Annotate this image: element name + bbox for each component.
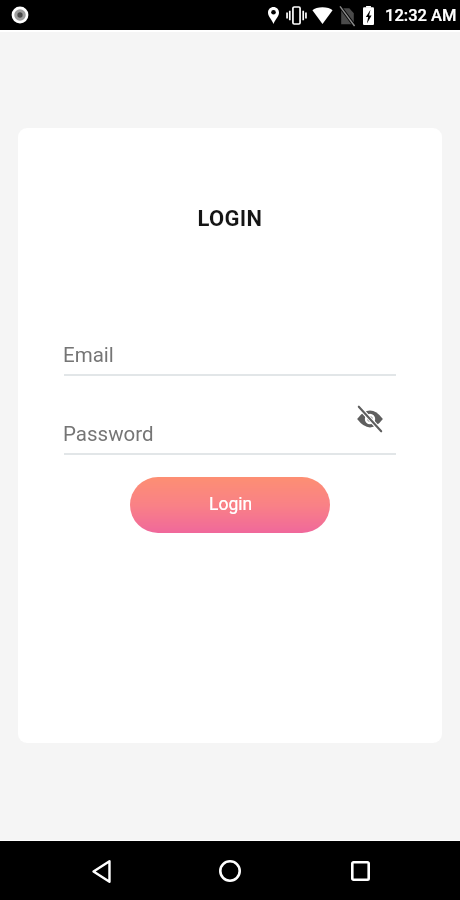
button[interactable]: Recents — [332, 843, 388, 899]
button[interactable]: Email — [64, 342, 396, 376]
staticText: Password — [63, 422, 154, 446]
staticText: Email — [63, 343, 114, 367]
staticText: Login — [209, 494, 253, 515]
button[interactable]: Password — [64, 421, 396, 455]
button[interactable]: Home — [202, 843, 258, 899]
staticText: 12:32 AM — [385, 6, 457, 25]
button[interactable]: Back — [73, 843, 129, 899]
button[interactable]: Login — [130, 477, 330, 533]
button[interactable]: Toggle password visibility — [355, 404, 385, 434]
staticText: LOGIN — [18, 206, 442, 232]
